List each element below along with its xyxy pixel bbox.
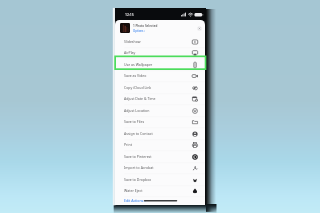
button[interactable]: Import to Acrobat xyxy=(115,162,205,174)
staticText: Import to Acrobat xyxy=(124,165,154,170)
button[interactable]: Close xyxy=(197,26,202,31)
button[interactable]: Adjust Location xyxy=(115,105,205,117)
button[interactable]: 1 Photo Selected xyxy=(115,20,205,36)
staticText: Adjust Date & Time xyxy=(124,96,156,101)
staticText: Use as Wallpaper xyxy=(124,62,153,67)
button[interactable]: Adjust Date & Time xyxy=(115,93,205,105)
staticText: Water Eject xyxy=(124,188,143,193)
staticText: Edit Actions… xyxy=(124,198,146,203)
staticText: Save to Pinterest xyxy=(124,154,152,159)
other: Signal, Wi-Fi and battery status xyxy=(181,12,200,17)
staticText: 12:15 xyxy=(125,12,134,17)
staticText: 1 Photo Selected xyxy=(133,24,158,28)
button[interactable]: Print xyxy=(115,139,205,151)
button[interactable]: Use as Wallpaper xyxy=(115,59,205,71)
staticText: Save to Files xyxy=(124,119,145,124)
button[interactable]: Slideshow xyxy=(115,36,205,48)
staticText: Slideshow xyxy=(124,39,141,44)
button[interactable]: AirPlay xyxy=(115,47,205,59)
staticText: Print xyxy=(124,142,132,147)
button[interactable]: Save to Pinterest xyxy=(115,151,205,163)
staticText: Options › xyxy=(133,29,145,33)
button[interactable]: Save as Video xyxy=(115,70,205,82)
button[interactable]: Edit Actions… xyxy=(115,197,205,205)
button[interactable]: Save to Files xyxy=(115,116,205,128)
staticText: AirPlay xyxy=(124,50,136,55)
button[interactable]: Copy iCloud Link xyxy=(115,82,205,94)
button[interactable]: Assign to Contact xyxy=(115,128,205,140)
staticText: Save as Video xyxy=(124,73,147,78)
button[interactable]: Water Eject xyxy=(115,185,205,197)
staticText: Save to Dropbox xyxy=(124,177,152,182)
staticText: Copy iCloud Link xyxy=(124,85,152,90)
staticText: Adjust Location xyxy=(124,108,150,113)
staticText: Assign to Contact xyxy=(124,131,153,136)
button[interactable]: Save to Dropbox xyxy=(115,174,205,186)
